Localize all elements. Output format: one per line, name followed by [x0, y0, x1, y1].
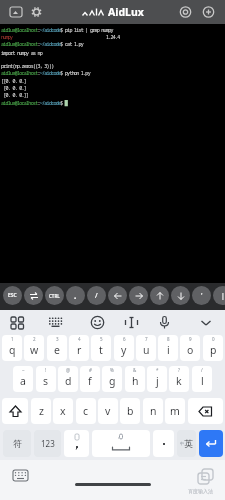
staticText: # — [89, 367, 92, 373]
button[interactable]: b — [120, 398, 140, 424]
staticText: ESC — [8, 292, 17, 299]
button[interactable] — [199, 430, 223, 457]
button[interactable] — [8, 314, 26, 331]
button[interactable]: ! — [36, 366, 56, 392]
button[interactable]: m — [165, 398, 185, 424]
button[interactable]: ? — [169, 366, 189, 392]
staticText: x — [60, 404, 66, 418]
staticText: / — [95, 291, 98, 301]
staticText: 符 — [13, 438, 22, 449]
staticText: t — [99, 343, 103, 357]
button[interactable]: / — [192, 366, 212, 392]
staticText: v — [105, 404, 111, 418]
staticText: r — [77, 343, 82, 357]
button[interactable] — [129, 286, 148, 305]
button[interactable]: v — [98, 398, 118, 424]
button[interactable]: @ — [58, 366, 78, 392]
staticText: a — [20, 374, 26, 388]
button[interactable] — [188, 398, 223, 424]
button[interactable]: 8 — [158, 335, 178, 361]
staticText: e — [54, 343, 60, 357]
staticText: ~ — [22, 367, 25, 373]
button[interactable] — [64, 430, 89, 457]
button[interactable] — [153, 430, 174, 457]
staticText: h — [132, 374, 139, 388]
staticText: 百度输入法 — [188, 488, 213, 494]
button[interactable]: . — [66, 286, 85, 305]
button[interactable]: x — [53, 398, 73, 424]
staticText: 5 — [100, 336, 103, 342]
staticText: numpy 1.24.4 — [1, 34, 120, 41]
staticText: [0. 0. 0.] — [1, 85, 27, 92]
button[interactable] — [123, 314, 140, 331]
button[interactable] — [29, 5, 44, 19]
staticText: CTRL — [49, 293, 60, 299]
staticText: % — [110, 367, 114, 373]
staticText: 9 — [189, 336, 192, 342]
button[interactable]: 9 — [180, 335, 200, 361]
button[interactable]: 0 — [203, 335, 223, 361]
staticText: k — [176, 374, 182, 388]
staticText: 3 — [56, 336, 59, 342]
button[interactable] — [12, 469, 29, 483]
staticText: i — [167, 343, 170, 357]
button[interactable]: 7 — [136, 335, 156, 361]
button[interactable]: 5 — [91, 335, 111, 361]
button[interactable]: / — [87, 286, 106, 305]
button[interactable]: c — [76, 398, 96, 424]
staticText: 4 — [78, 336, 81, 342]
button[interactable]: CTRL — [45, 286, 64, 305]
button[interactable]: n — [143, 398, 163, 424]
button[interactable]: & — [125, 366, 145, 392]
staticText: m — [170, 404, 180, 418]
button[interactable] — [47, 314, 65, 331]
button[interactable]: ' — [192, 286, 211, 305]
button[interactable] — [178, 5, 193, 19]
button[interactable]: 3 — [47, 335, 67, 361]
button[interactable]: 4 — [69, 335, 89, 361]
button[interactable]: 符 — [3, 430, 31, 457]
staticText: n — [150, 404, 157, 418]
staticText: 6 — [123, 336, 126, 342]
button[interactable]: # — [80, 366, 100, 392]
staticText: 7 — [145, 336, 148, 342]
staticText: print(np.zeros((3, 3))) — [1, 63, 54, 70]
button[interactable] — [150, 286, 169, 305]
staticText: 8 — [167, 336, 170, 342]
staticText: o — [187, 343, 194, 357]
staticText: f — [88, 374, 92, 388]
button[interactable]: ESC — [3, 286, 22, 305]
button[interactable] — [24, 286, 43, 305]
button[interactable]: 6 — [114, 335, 134, 361]
staticText: aidlux@localhost:~/aidcode$ pip list | g… — [1, 27, 113, 34]
button[interactable]: 2 — [24, 335, 44, 361]
staticText: j — [156, 374, 159, 388]
staticText: | — [221, 291, 225, 301]
button[interactable]: z — [31, 398, 51, 424]
button[interactable] — [198, 315, 214, 330]
button[interactable]: 中 — [177, 430, 196, 457]
staticText: . — [74, 290, 77, 301]
button[interactable] — [108, 286, 127, 305]
button[interactable]: % — [102, 366, 122, 392]
button[interactable]: 123 — [34, 430, 61, 457]
button[interactable]: | — [213, 286, 225, 305]
button[interactable] — [2, 398, 28, 424]
button[interactable] — [8, 5, 24, 19]
button[interactable] — [201, 5, 216, 19]
button[interactable] — [156, 314, 173, 331]
staticText: ' — [201, 291, 203, 301]
staticText: p — [210, 343, 217, 357]
staticText: u — [143, 343, 150, 357]
button[interactable] — [89, 314, 106, 331]
staticText: & — [133, 367, 137, 373]
button[interactable]: * — [147, 366, 167, 392]
button[interactable]: 1 — [2, 335, 22, 361]
button[interactable] — [92, 430, 150, 457]
staticText: aidlux@localhost:~/aidcode$ █ — [1, 100, 68, 107]
button[interactable] — [171, 286, 190, 305]
staticText: d — [65, 374, 72, 388]
button[interactable]: ~ — [13, 366, 33, 392]
staticText: ? — [178, 367, 180, 373]
staticText: ! — [45, 367, 47, 373]
